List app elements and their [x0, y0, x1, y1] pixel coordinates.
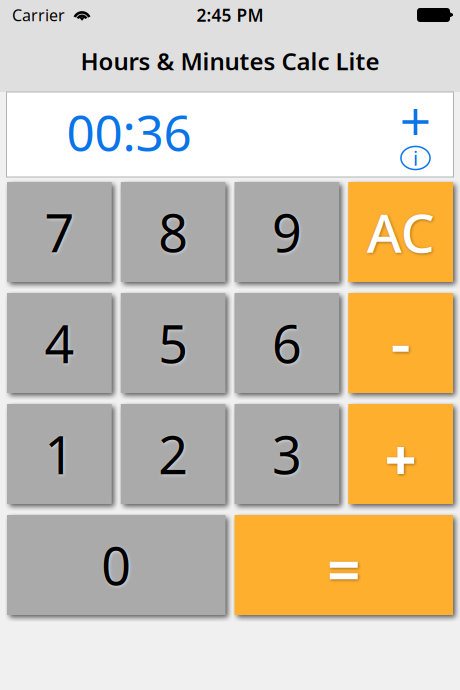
staticText: AC [367, 197, 435, 267]
staticText: 00:36 [66, 99, 191, 164]
staticText: 5 [158, 308, 188, 378]
button[interactable]: Plus [348, 404, 453, 504]
staticText: 8 [158, 197, 188, 267]
button[interactable]: Add entry [393, 103, 437, 141]
staticText: 6 [272, 308, 302, 378]
button[interactable]: 6 [234, 293, 339, 393]
staticText: Hours & Minutes Calc Lite [80, 45, 379, 77]
button[interactable]: 7 [7, 182, 112, 282]
button[interactable]: 0 [7, 515, 225, 615]
staticText: Carrier [12, 4, 65, 26]
button[interactable]: Equals [234, 515, 453, 615]
button[interactable]: 2 [121, 404, 226, 504]
button[interactable]: 8 [121, 182, 226, 282]
staticText: 2:45 PM [196, 3, 263, 26]
staticText: 2 [158, 419, 188, 489]
button[interactable]: 5 [121, 293, 226, 393]
button[interactable]: AC [348, 182, 453, 282]
staticText: i [413, 145, 418, 171]
button[interactable]: 3 [234, 404, 339, 504]
staticText: 1 [44, 419, 74, 489]
button[interactable]: Minus [348, 293, 453, 393]
staticText: 9 [272, 197, 302, 267]
staticText: 4 [44, 308, 74, 378]
button[interactable]: 4 [7, 293, 112, 393]
staticText: 3 [272, 419, 302, 489]
staticText: 0 [101, 530, 131, 600]
button[interactable]: Info [393, 141, 437, 175]
button[interactable]: 9 [234, 182, 339, 282]
button[interactable]: 1 [7, 404, 112, 504]
staticText: 7 [44, 197, 74, 267]
